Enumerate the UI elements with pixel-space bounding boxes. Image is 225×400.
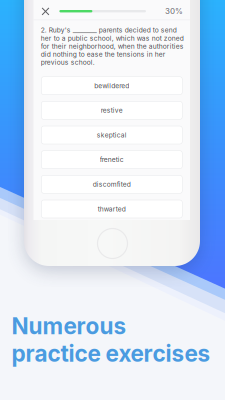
- staticText: thwarted: [98, 205, 126, 213]
- button[interactable]: restive: [41, 101, 182, 119]
- button[interactable]: bewildered: [41, 77, 182, 95]
- staticText: skeptical: [97, 131, 127, 139]
- button[interactable]: thwarted: [41, 200, 182, 218]
- staticText: restive: [101, 106, 123, 114]
- staticText: bewildered: [94, 82, 129, 90]
- staticText: Numerous: [11, 312, 126, 340]
- staticText: 2. Ruby's ________ parents decided to se…: [41, 26, 184, 66]
- button[interactable]: discomfited: [41, 175, 182, 193]
- staticText: 30%: [165, 6, 183, 16]
- staticText: frenetic: [100, 156, 124, 164]
- staticText: discomfited: [93, 180, 131, 188]
- button[interactable]: Close: [38, 4, 52, 19]
- button[interactable]: frenetic: [41, 151, 182, 169]
- staticText: practice exercises: [11, 340, 210, 367]
- button[interactable]: skeptical: [41, 126, 182, 144]
